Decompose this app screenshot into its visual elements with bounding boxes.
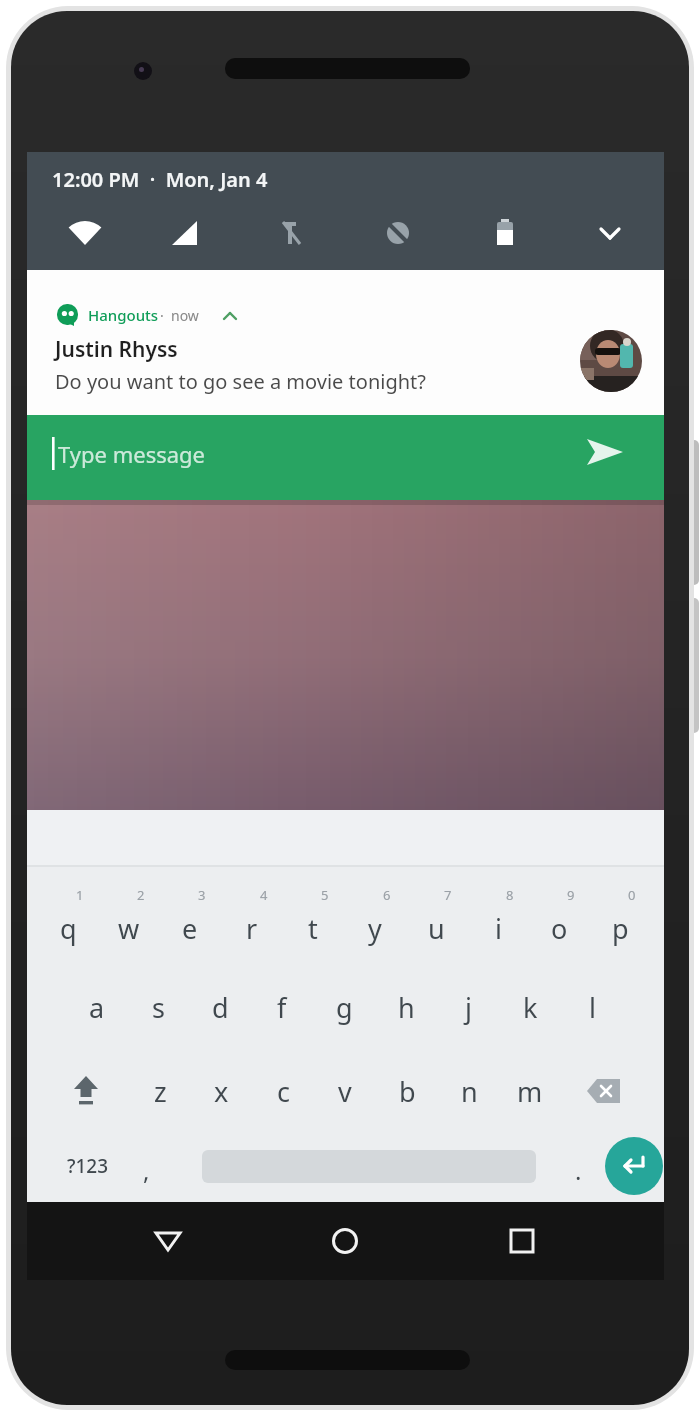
button[interactable]: r bbox=[230, 906, 274, 950]
staticText: 1 bbox=[76, 886, 84, 904]
button[interactable]: o bbox=[537, 906, 581, 950]
staticText: x bbox=[214, 1073, 229, 1110]
button[interactable]: , bbox=[124, 1148, 168, 1192]
button[interactable] bbox=[321, 1220, 369, 1262]
staticText: Type message bbox=[58, 439, 206, 469]
staticText: s bbox=[152, 989, 165, 1026]
button[interactable]: u bbox=[414, 906, 458, 950]
staticText: a bbox=[89, 989, 105, 1026]
staticText: p bbox=[612, 910, 629, 947]
button[interactable]: v bbox=[323, 1069, 367, 1113]
staticText: , bbox=[143, 1154, 150, 1187]
staticText: j bbox=[465, 989, 472, 1026]
staticText: v bbox=[338, 1073, 352, 1110]
button[interactable]: j bbox=[446, 985, 490, 1029]
button[interactable]: i bbox=[476, 906, 520, 950]
staticText: 12:00 PM · Mon, Jan 4 bbox=[52, 166, 268, 193]
staticText: 7 bbox=[444, 886, 452, 904]
button[interactable] bbox=[144, 1220, 192, 1262]
button[interactable]: d bbox=[198, 985, 242, 1029]
button[interactable]: l bbox=[570, 985, 614, 1029]
staticText: f bbox=[277, 989, 287, 1026]
staticText: . bbox=[575, 1154, 582, 1187]
staticText: ?123 bbox=[67, 1153, 109, 1179]
staticText: i bbox=[495, 910, 502, 947]
staticText: m bbox=[517, 1073, 543, 1110]
button[interactable]: x bbox=[199, 1069, 243, 1113]
button[interactable]: a bbox=[75, 985, 119, 1029]
button[interactable]: s bbox=[136, 985, 180, 1029]
button[interactable]: p bbox=[598, 906, 642, 950]
button[interactable]: ?123 bbox=[63, 1146, 113, 1186]
staticText: Justin Rhyss bbox=[55, 335, 178, 364]
staticText: 8 bbox=[506, 886, 514, 904]
staticText: z bbox=[154, 1073, 167, 1110]
button[interactable]: y bbox=[353, 906, 397, 950]
staticText: w bbox=[118, 910, 140, 947]
button[interactable]: g bbox=[322, 985, 366, 1029]
staticText: l bbox=[589, 989, 596, 1026]
button[interactable]: w bbox=[107, 906, 151, 950]
button[interactable]: t bbox=[291, 906, 335, 950]
button[interactable]: k bbox=[508, 985, 552, 1029]
staticText: Do you want to go see a movie tonight? bbox=[55, 368, 426, 395]
button[interactable]: h bbox=[384, 985, 428, 1029]
button[interactable] bbox=[64, 1069, 108, 1113]
staticText: d bbox=[212, 989, 229, 1026]
staticText: g bbox=[336, 989, 353, 1026]
staticText: u bbox=[428, 910, 445, 947]
staticText: q bbox=[60, 910, 77, 947]
button[interactable]: m bbox=[508, 1069, 552, 1113]
button[interactable]: q bbox=[46, 906, 90, 950]
staticText: Hangouts bbox=[88, 305, 159, 325]
staticText: 6 bbox=[383, 886, 391, 904]
staticText: h bbox=[398, 989, 415, 1026]
staticText: r bbox=[246, 910, 258, 947]
staticText: 5 bbox=[321, 886, 329, 904]
button[interactable]: z bbox=[138, 1069, 182, 1113]
staticText: k bbox=[523, 989, 538, 1026]
staticText: t bbox=[308, 910, 318, 947]
staticText: y bbox=[368, 910, 382, 947]
button[interactable] bbox=[27, 500, 664, 810]
button[interactable]: b bbox=[385, 1069, 429, 1113]
staticText: 3 bbox=[198, 886, 206, 904]
button[interactable]: Hangouts bbox=[27, 270, 664, 415]
button[interactable]: n bbox=[447, 1069, 491, 1113]
staticText: e bbox=[182, 910, 198, 947]
staticText: c bbox=[277, 1073, 290, 1110]
button[interactable]: c bbox=[261, 1069, 305, 1113]
button[interactable]: e bbox=[168, 906, 212, 950]
button[interactable]: Type message bbox=[27, 415, 664, 500]
button[interactable] bbox=[605, 1137, 663, 1195]
staticText: · now bbox=[160, 306, 199, 325]
staticText: b bbox=[399, 1073, 416, 1110]
staticText: 0 bbox=[628, 886, 636, 904]
button[interactable] bbox=[498, 1220, 546, 1262]
button[interactable]: . bbox=[556, 1148, 600, 1192]
staticText: 2 bbox=[137, 886, 145, 904]
staticText: n bbox=[461, 1073, 478, 1110]
staticText: 9 bbox=[567, 886, 575, 904]
staticText: o bbox=[551, 910, 568, 947]
button[interactable] bbox=[581, 1069, 625, 1113]
staticText: 4 bbox=[260, 886, 268, 904]
button[interactable]: f bbox=[260, 985, 304, 1029]
